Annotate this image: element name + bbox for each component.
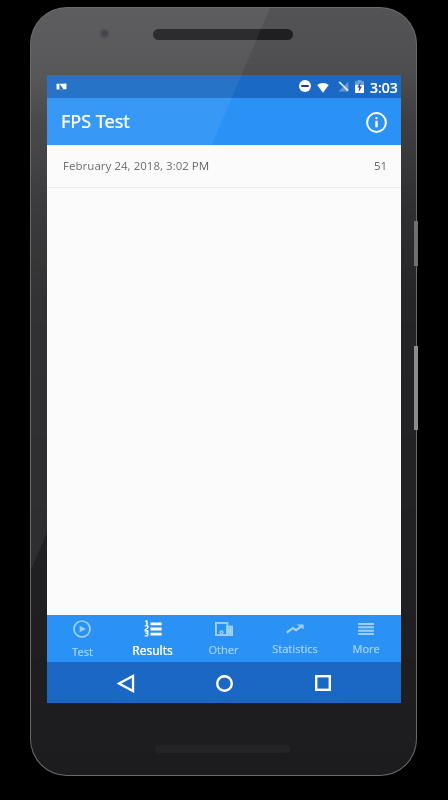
button[interactable]: Results: [117, 615, 188, 662]
button[interactable]: Home: [204, 663, 244, 703]
staticText: Test: [72, 644, 93, 659]
staticText: Other: [208, 642, 239, 657]
button[interactable]: Test: [47, 615, 117, 662]
button[interactable]: Other: [188, 615, 259, 662]
button[interactable]: February 24, 2018, 3:02 PM: [47, 145, 401, 188]
staticText: 3:03: [370, 78, 398, 97]
button[interactable]: Back: [106, 663, 146, 703]
staticText: 51: [374, 158, 388, 174]
staticText: FPS Test: [61, 109, 130, 134]
button[interactable]: Info: [358, 104, 394, 140]
staticText: February 24, 2018, 3:02 PM: [63, 158, 210, 174]
staticText: More: [352, 641, 380, 656]
button[interactable]: Statistics: [259, 615, 330, 662]
staticText: Statistics: [272, 641, 318, 656]
button[interactable]: More: [330, 615, 401, 662]
button[interactable]: Recents: [303, 663, 343, 703]
staticText: Results: [132, 642, 173, 658]
